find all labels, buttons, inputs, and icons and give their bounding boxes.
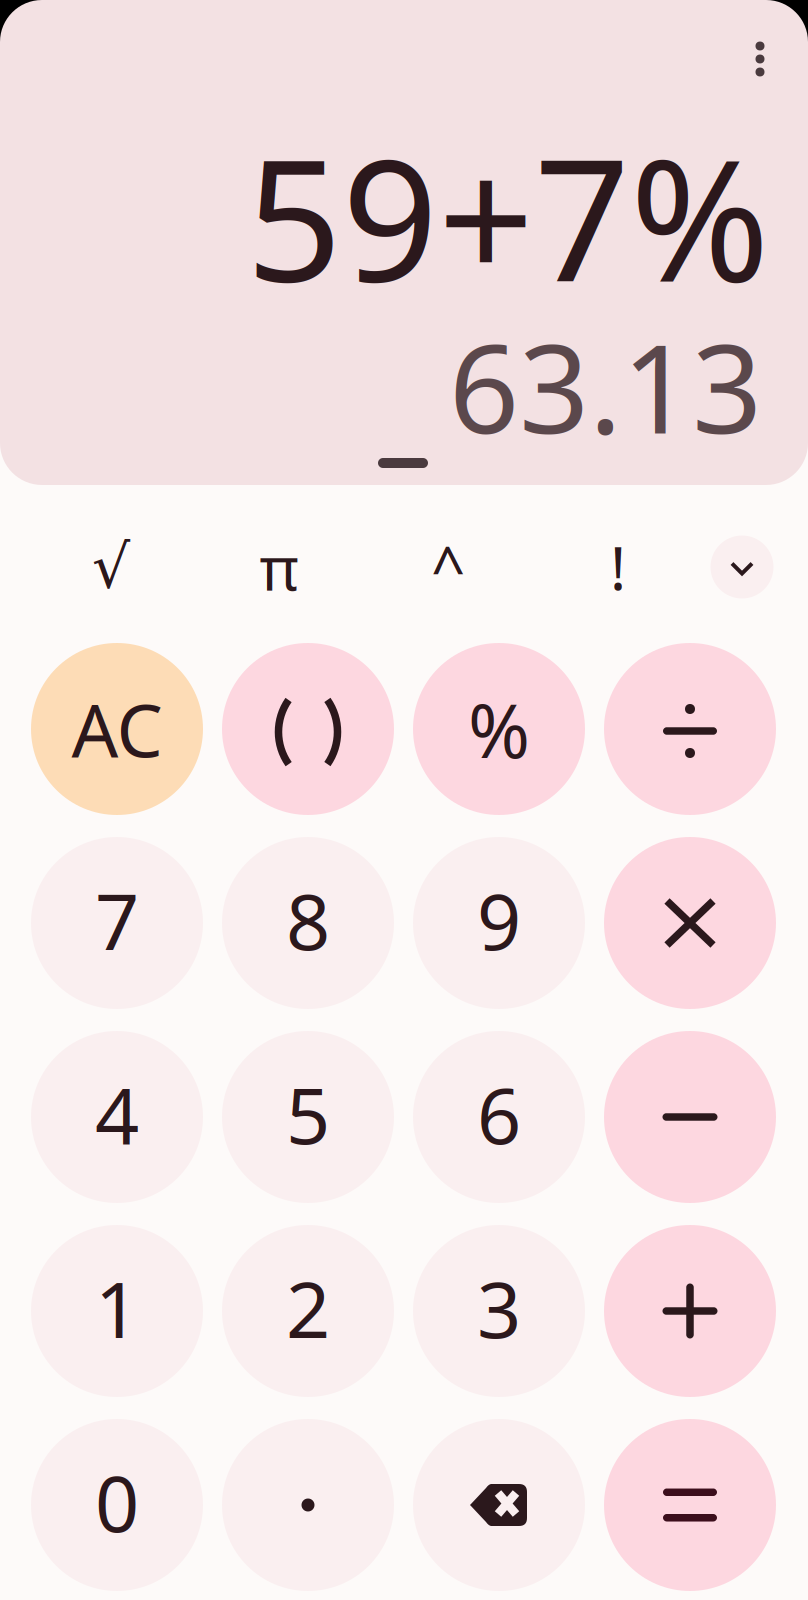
staticText: 6	[477, 1063, 521, 1165]
staticText: π	[259, 527, 298, 607]
button[interactable]: Minus	[604, 1031, 776, 1203]
button[interactable]: %	[413, 643, 585, 815]
button[interactable]: 1	[31, 1225, 203, 1397]
staticText: 3	[477, 1257, 521, 1359]
staticText: 63.13	[449, 305, 762, 467]
button[interactable]: AC	[31, 643, 203, 815]
button[interactable]: 5	[222, 1031, 394, 1203]
staticText: AC	[71, 680, 162, 778]
button[interactable]: !	[543, 512, 693, 622]
button[interactable]: Plus	[604, 1225, 776, 1397]
button[interactable]: 4	[31, 1031, 203, 1203]
staticText: %	[468, 679, 530, 779]
button[interactable]: 0	[31, 1419, 203, 1591]
staticText: √	[92, 533, 130, 601]
button[interactable]: 6	[413, 1031, 585, 1203]
button[interactable]: Multiply	[604, 837, 776, 1009]
button[interactable]: π	[204, 512, 354, 622]
button[interactable]: Equals	[604, 1419, 776, 1591]
button[interactable]: Delete	[413, 1419, 585, 1591]
staticText: ^	[431, 527, 465, 607]
button[interactable]: 9	[413, 837, 585, 1009]
staticText: 4	[95, 1063, 139, 1165]
staticText: 2	[286, 1257, 330, 1359]
button[interactable]: 8	[222, 837, 394, 1009]
button[interactable]: 3	[413, 1225, 585, 1397]
staticText: 7	[95, 869, 139, 971]
staticText: 5	[286, 1063, 330, 1165]
button[interactable]: Show more functions	[710, 535, 773, 598]
button[interactable]: Parentheses	[222, 643, 394, 815]
button[interactable]: 2	[222, 1225, 394, 1397]
staticText: !	[610, 527, 626, 607]
button[interactable]: 7	[31, 837, 203, 1009]
button[interactable]: Divide	[604, 643, 776, 815]
staticText: 0	[95, 1451, 139, 1553]
button[interactable]: More options	[731, 26, 789, 92]
button[interactable]: ^	[373, 512, 523, 622]
staticText: 8	[286, 869, 330, 971]
button[interactable]: Decimal point	[222, 1419, 394, 1591]
staticText: 1	[95, 1257, 139, 1359]
button[interactable]: √	[36, 512, 186, 622]
staticText: 9	[477, 869, 521, 971]
staticText: 59+7%	[246, 104, 770, 328]
